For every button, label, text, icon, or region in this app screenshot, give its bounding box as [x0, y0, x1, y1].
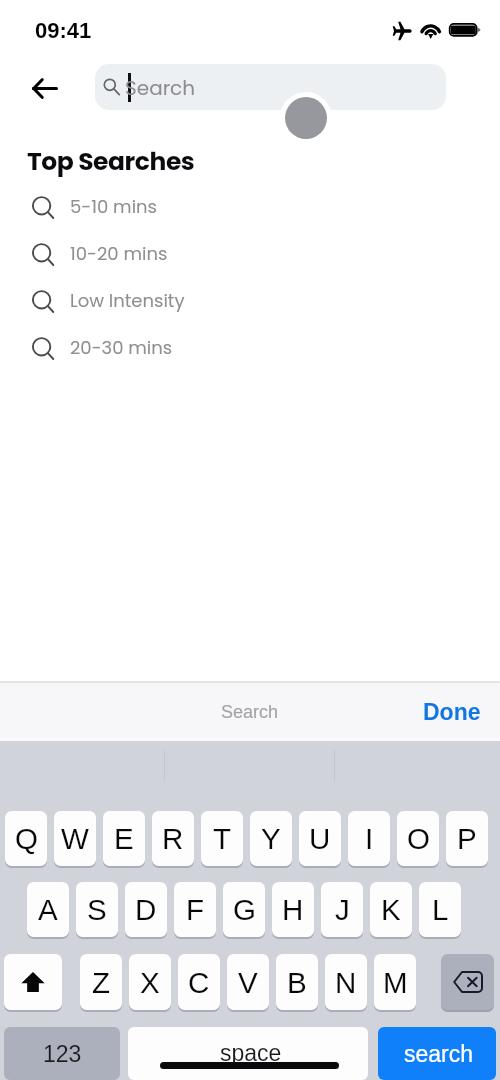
staticText: B [287, 966, 307, 999]
button[interactable]: Z [80, 954, 122, 1010]
button[interactable]: R [152, 811, 194, 866]
staticText: F [186, 893, 205, 926]
staticText: space [220, 1040, 282, 1066]
staticText: D [135, 893, 157, 926]
button[interactable]: J [321, 882, 363, 937]
button[interactable]: 5-10 mins [0, 183, 500, 230]
button[interactable]: A [27, 882, 69, 937]
staticText: W [61, 822, 89, 855]
staticText: 5-10 mins [70, 194, 157, 219]
staticText: J [335, 893, 350, 926]
button[interactable]: P [446, 811, 488, 866]
staticText: Done [423, 699, 481, 725]
button[interactable]: space [128, 1027, 368, 1080]
button[interactable]: Shift [4, 954, 62, 1010]
staticText: Search [125, 74, 196, 102]
staticText: X [140, 966, 160, 999]
button[interactable]: S [76, 882, 118, 937]
button[interactable]: V [227, 954, 269, 1010]
button[interactable]: 20-30 mins [0, 324, 500, 371]
staticText: C [188, 966, 210, 999]
staticText: I [365, 822, 374, 855]
staticText: Q [15, 822, 38, 855]
button[interactable]: F [174, 882, 216, 937]
button[interactable]: I [348, 811, 390, 866]
staticText: U [309, 822, 331, 855]
button[interactable]: U [299, 811, 341, 866]
staticText: 123 [43, 1041, 82, 1067]
button[interactable]: T [201, 811, 243, 866]
staticText: Z [92, 966, 111, 999]
button[interactable]: N [325, 954, 367, 1010]
staticText: V [238, 966, 258, 999]
button[interactable]: 10-20 mins [0, 230, 500, 277]
staticText: Y [261, 822, 281, 855]
button[interactable]: Back [18, 63, 72, 113]
staticText: N [335, 966, 357, 999]
button[interactable]: Search [95, 64, 446, 110]
button[interactable]: B [276, 954, 318, 1010]
staticText: H [282, 893, 304, 926]
staticText: P [457, 822, 477, 855]
staticText: 10-20 mins [70, 241, 168, 266]
staticText: G [233, 893, 256, 926]
staticText: E [114, 822, 134, 855]
staticText: S [87, 893, 107, 926]
button[interactable]: K [370, 882, 412, 937]
staticText: Top Searches [27, 144, 195, 179]
staticText: Low Intensity [70, 288, 185, 313]
button[interactable]: search [378, 1027, 496, 1080]
staticText: Search [221, 702, 279, 722]
staticText: L [432, 893, 449, 926]
button[interactable]: E [103, 811, 145, 866]
button[interactable]: D [125, 882, 167, 937]
staticText: M [383, 966, 408, 999]
button[interactable]: X [129, 954, 171, 1010]
staticText: O [407, 822, 430, 855]
button[interactable]: H [272, 882, 314, 937]
staticText: T [213, 822, 232, 855]
staticText: R [162, 822, 184, 855]
button[interactable]: O [397, 811, 439, 866]
button[interactable]: C [178, 954, 220, 1010]
staticText: A [38, 893, 58, 926]
button[interactable]: W [54, 811, 96, 866]
staticText: K [381, 893, 401, 926]
button[interactable]: Low Intensity [0, 277, 500, 324]
button[interactable]: 123 [4, 1027, 120, 1080]
button[interactable]: Backspace [441, 954, 494, 1010]
button[interactable]: G [223, 882, 265, 937]
button[interactable]: Q [5, 811, 47, 866]
staticText: 20-30 mins [70, 335, 173, 360]
staticText: search [404, 1041, 474, 1067]
button[interactable]: Done [418, 696, 486, 728]
staticText: 09:41 [35, 18, 92, 43]
button[interactable]: L [419, 882, 461, 937]
button[interactable]: M [374, 954, 416, 1010]
button[interactable]: Y [250, 811, 292, 866]
